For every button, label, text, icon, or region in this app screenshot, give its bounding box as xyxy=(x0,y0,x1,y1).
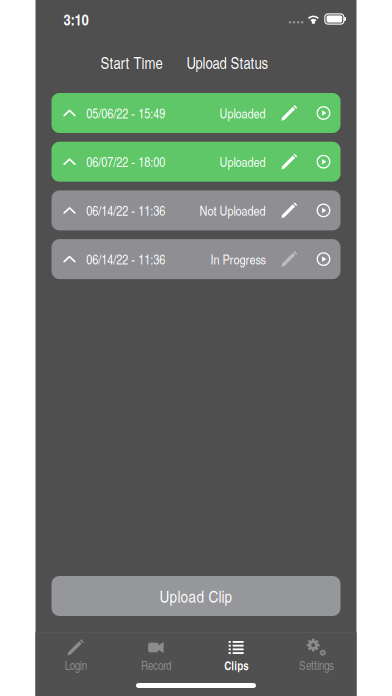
button[interactable]: 06/07/22 - 18:00 xyxy=(51,142,340,182)
staticText: Start Time xyxy=(100,51,162,73)
button[interactable]: Record xyxy=(116,632,196,677)
button[interactable]: 06/14/22 - 11:36 xyxy=(51,190,340,230)
staticText: Uploaded xyxy=(219,153,265,171)
staticText: Upload Clip xyxy=(159,585,232,607)
staticText: Clips xyxy=(224,657,248,674)
staticText: 06/14/22 - 11:36 xyxy=(86,201,165,220)
staticText: Upload Status xyxy=(186,51,268,73)
button[interactable]: Settings xyxy=(276,632,356,677)
staticText: 06/14/22 - 11:36 xyxy=(86,250,165,268)
staticText: Login xyxy=(65,657,87,673)
button[interactable]: 06/14/22 - 11:36 xyxy=(51,239,340,279)
staticText: Settings xyxy=(299,657,334,673)
button[interactable]: 05/06/22 - 15:49 xyxy=(51,93,340,133)
button[interactable]: Upload Clip xyxy=(51,576,340,616)
button[interactable]: Clips xyxy=(196,632,276,677)
button[interactable]: Login xyxy=(35,632,116,677)
staticText: Record xyxy=(141,657,171,673)
staticText: 3:10 xyxy=(63,8,88,30)
staticText: Uploaded xyxy=(219,104,265,122)
staticText: 05/06/22 - 15:49 xyxy=(86,104,165,122)
staticText: In Progress xyxy=(210,250,265,268)
staticText: Not Uploaded xyxy=(199,201,265,220)
staticText: 06/07/22 - 18:00 xyxy=(86,153,165,171)
